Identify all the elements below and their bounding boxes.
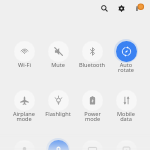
- button[interactable]: Settings: [113, 0, 129, 16]
- staticText: Flashlight: [45, 110, 71, 118]
- staticText: Wi-Fi: [18, 61, 31, 69]
- button[interactable]: Wi-Fi: [7, 39, 41, 71]
- staticText: Auto rotate: [118, 61, 134, 73]
- button[interactable]: Mute: [41, 39, 75, 71]
- button[interactable]: Mobile data: [109, 88, 143, 124]
- button[interactable]: Power mode: [75, 88, 109, 124]
- button[interactable]: Search: [96, 0, 112, 16]
- button[interactable]: [75, 138, 109, 150]
- button[interactable]: Auto rotate: [109, 39, 143, 75]
- button[interactable]: Bluetooth: [75, 39, 109, 71]
- button[interactable]: [41, 138, 75, 150]
- button[interactable]: [109, 138, 143, 150]
- staticText: Power mode: [84, 110, 101, 122]
- staticText: Mute: [51, 61, 65, 69]
- staticText: Mobile data: [117, 110, 135, 122]
- button[interactable]: [7, 138, 41, 150]
- staticText: Airplane mode: [13, 110, 35, 122]
- staticText: Bluetooth: [79, 61, 105, 69]
- button[interactable]: Profile: [131, 0, 147, 15]
- button[interactable]: Flashlight: [41, 88, 75, 120]
- button[interactable]: Airplane mode: [7, 88, 41, 124]
